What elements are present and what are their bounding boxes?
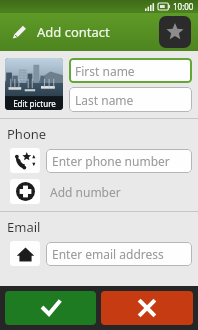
staticText: Add contact [37, 23, 110, 41]
staticText: Edit picture [13, 98, 56, 109]
staticText: Last name [75, 92, 134, 108]
button[interactable]: Email type [10, 241, 40, 266]
staticText: Add number [50, 184, 121, 200]
button[interactable]: Enter email address [46, 242, 192, 266]
button[interactable]: Last name [69, 87, 192, 112]
button[interactable]: Edit picture [5, 58, 63, 110]
button[interactable]: Enter phone number [46, 149, 192, 173]
button[interactable]: Edit [7, 21, 29, 43]
button[interactable]: Add number [0, 179, 198, 204]
staticText: 10:00 [173, 1, 194, 12]
button[interactable]: Favorite [159, 16, 191, 48]
staticText: Enter email address [52, 246, 164, 262]
button[interactable]: Save [5, 291, 96, 325]
staticText: First name [75, 63, 135, 79]
button[interactable]: First name [69, 58, 192, 83]
staticText: Email [7, 218, 41, 236]
staticText: Enter phone number [52, 153, 170, 169]
button[interactable]: Cancel [101, 291, 193, 325]
staticText: Phone [7, 125, 47, 143]
button[interactable]: Phone type [10, 148, 40, 173]
